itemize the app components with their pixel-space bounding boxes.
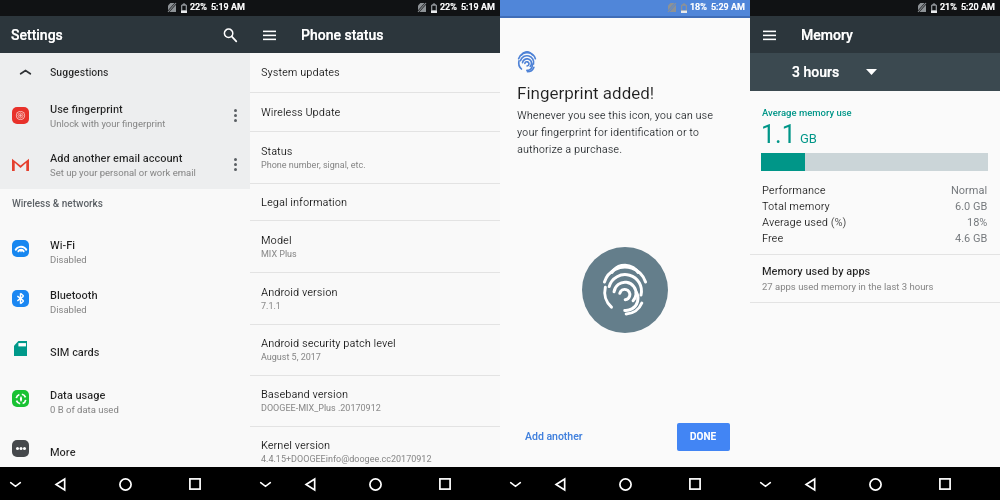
button[interactable]: Recent apps xyxy=(931,470,959,498)
button[interactable]: Baseband version xyxy=(250,376,500,427)
staticText: Suggestions xyxy=(50,66,109,78)
button[interactable]: Back xyxy=(296,470,324,498)
staticText: Average used (%) xyxy=(762,216,847,229)
staticText: Normal xyxy=(951,184,988,197)
staticText: 22% xyxy=(440,2,457,13)
staticText: 18% xyxy=(690,2,707,13)
staticText: Data usage xyxy=(50,389,106,402)
staticText: Phone number, signal, etc. xyxy=(261,160,366,171)
button[interactable]: Home xyxy=(361,470,389,498)
staticText: 6.0 GB xyxy=(955,200,988,213)
button[interactable]: Back xyxy=(546,470,574,498)
button[interactable]: Hide keyboard xyxy=(503,472,527,496)
staticText: Whenever you see this icon, you can use … xyxy=(517,109,721,156)
button[interactable]: Android version xyxy=(250,273,500,325)
button[interactable]: Recent apps xyxy=(181,470,209,498)
button[interactable]: Memory used by apps xyxy=(750,255,1000,302)
staticText: Add another xyxy=(525,430,583,442)
staticText: Fingerprint added! xyxy=(517,83,655,103)
button[interactable]: Add another email account xyxy=(0,140,250,189)
staticText: MIX Plus xyxy=(261,249,297,260)
staticText: Add another email account xyxy=(50,152,183,165)
button[interactable]: Suggestions xyxy=(0,53,250,91)
staticText: GB xyxy=(800,131,817,146)
staticText: Model xyxy=(261,234,292,247)
staticText: Status xyxy=(261,145,293,158)
staticText: Average memory use xyxy=(762,107,852,118)
button[interactable]: Use fingerprint xyxy=(0,91,250,140)
button[interactable]: More options xyxy=(220,91,250,140)
staticText: 0 B of data used xyxy=(50,404,119,415)
button[interactable]: 3 hours xyxy=(750,53,1000,91)
staticText: 5:29 AM xyxy=(711,2,745,13)
staticText: Unlock with your fingerprint xyxy=(50,118,166,129)
button[interactable]: Search settings xyxy=(219,24,241,46)
staticText: Android security patch level xyxy=(261,337,396,350)
staticText: 21% xyxy=(940,2,957,13)
staticText: Kernel version xyxy=(261,439,331,452)
staticText: Wi-Fi xyxy=(50,239,76,252)
staticText: SIM cards xyxy=(50,346,100,359)
staticText: Wireless Update xyxy=(261,106,341,119)
staticText: 27 apps used memory in the last 3 hours xyxy=(762,281,934,292)
button[interactable]: Home xyxy=(111,470,139,498)
staticText: Settings xyxy=(11,27,63,43)
button[interactable]: DONE xyxy=(677,423,730,451)
staticText: Memory used by apps xyxy=(762,265,871,278)
staticText: Android version xyxy=(261,286,338,299)
staticText: Phone status xyxy=(301,27,384,43)
staticText: System updates xyxy=(261,66,340,79)
staticText: 18% xyxy=(967,216,988,229)
button[interactable]: Legal information xyxy=(250,184,500,221)
button[interactable]: Model xyxy=(250,221,500,273)
button[interactable]: More options xyxy=(220,140,250,189)
staticText: Legal information xyxy=(261,196,348,209)
staticText: August 5, 2017 xyxy=(261,352,321,363)
staticText: 3 hours xyxy=(792,64,840,80)
staticText: Wireless & networks xyxy=(12,198,103,210)
staticText: 4.4.15+DOOGEEinfo@doogee.cc20170912 xyxy=(261,454,432,465)
staticText: 4.6 GB xyxy=(955,232,988,245)
button[interactable]: Wi-Fi xyxy=(0,227,250,277)
button[interactable]: Home xyxy=(861,470,889,498)
staticText: Disabled xyxy=(50,254,87,265)
staticText: 5:19 AM xyxy=(211,2,245,13)
button[interactable]: Hide keyboard xyxy=(753,472,777,496)
button[interactable]: More xyxy=(0,427,250,477)
button[interactable]: Status xyxy=(250,132,500,184)
staticText: Disabled xyxy=(50,304,87,315)
button[interactable]: Bluetooth xyxy=(0,277,250,327)
button[interactable]: Hide keyboard xyxy=(3,472,27,496)
staticText: 7.1.1 xyxy=(261,301,281,312)
button[interactable]: Add another xyxy=(521,426,587,446)
button[interactable]: Android security patch level xyxy=(250,325,500,376)
button[interactable]: Kernel version xyxy=(250,427,500,478)
button[interactable]: System updates xyxy=(250,53,500,93)
button[interactable]: Data usage xyxy=(0,377,250,427)
staticText: Bluetooth xyxy=(50,289,98,302)
button[interactable]: Recent apps xyxy=(681,470,709,498)
staticText: Total memory xyxy=(762,200,830,213)
staticText: 5:20 AM xyxy=(961,2,995,13)
button[interactable]: Back xyxy=(796,470,824,498)
staticText: 5:19 AM xyxy=(461,2,495,13)
staticText: DOOGEE-MIX_Plus .20170912 xyxy=(261,403,381,414)
staticText: DONE xyxy=(690,431,717,443)
button[interactable]: Hide keyboard xyxy=(253,472,277,496)
staticText: Set up your personal or work email xyxy=(50,167,196,178)
staticText: Memory xyxy=(801,27,853,43)
button[interactable]: SIM cards xyxy=(0,327,250,377)
staticText: Use fingerprint xyxy=(50,103,123,116)
staticText: Baseband version xyxy=(261,388,349,401)
button[interactable]: Home xyxy=(611,470,639,498)
button[interactable]: Wireless Update xyxy=(250,93,500,132)
button[interactable]: Open navigation menu xyxy=(258,24,280,46)
staticText: 1.1 xyxy=(761,120,796,149)
staticText: Free xyxy=(762,232,784,245)
button[interactable]: Back xyxy=(46,470,74,498)
button[interactable]: Recent apps xyxy=(431,470,459,498)
button[interactable]: Open navigation menu xyxy=(758,24,780,46)
staticText: More xyxy=(50,446,76,459)
staticText: Performance xyxy=(762,184,826,197)
staticText: 22% xyxy=(190,2,207,13)
